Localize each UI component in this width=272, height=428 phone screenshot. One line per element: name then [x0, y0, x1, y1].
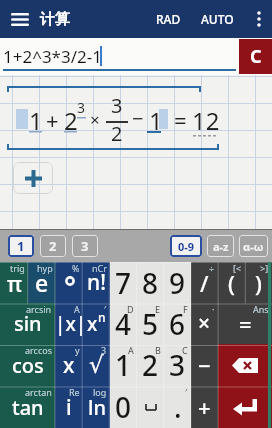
staticText: [<	[233, 262, 242, 274]
staticText: ′	[104, 303, 107, 315]
staticText: x	[87, 311, 98, 337]
button[interactable]: 3	[72, 235, 98, 257]
button[interactable]: B	[137, 344, 164, 386]
staticText: 0-9	[178, 239, 195, 254]
button[interactable]: y	[55, 344, 83, 386]
button[interactable]: Ans	[218, 303, 272, 344]
button[interactable]	[13, 162, 53, 194]
button[interactable]: a-z	[207, 235, 234, 257]
staticText: |x|	[55, 311, 83, 337]
button[interactable]: 1	[8, 235, 34, 257]
button[interactable]: arctan	[0, 386, 55, 428]
staticText: hyp	[37, 262, 53, 274]
button[interactable]: RAD	[150, 3, 187, 35]
staticText: 8	[142, 264, 159, 302]
staticText: 3	[101, 344, 107, 356]
staticText: π	[7, 268, 22, 298]
button[interactable]: A	[110, 344, 137, 386]
button[interactable]: 0-9	[170, 235, 202, 257]
staticText: 2	[111, 120, 123, 147]
button[interactable]: arcsin	[0, 303, 55, 344]
button[interactable]: 7	[110, 262, 137, 303]
staticText: E	[155, 303, 161, 315]
button[interactable]: 3	[83, 344, 110, 386]
button[interactable]: hyp	[28, 262, 56, 303]
staticText: 1+2^3*3/2-1	[3, 45, 102, 68]
button[interactable]: %	[56, 262, 83, 303]
staticText: D	[127, 303, 134, 315]
staticText: (	[228, 268, 235, 298]
button[interactable]: D	[110, 303, 137, 344]
staticText: tan	[12, 394, 44, 421]
staticText: n	[98, 309, 106, 325]
staticText: a-z	[213, 239, 229, 254]
button[interactable]: α-ω	[239, 235, 268, 257]
button[interactable]: +	[191, 386, 218, 428]
button[interactable]	[218, 386, 272, 428]
staticText: 3	[77, 98, 86, 117]
button[interactable]: C	[239, 39, 272, 74]
staticText: y	[75, 344, 80, 356]
staticText: )	[255, 268, 262, 298]
button[interactable]: −	[191, 344, 218, 386]
button[interactable]: 0	[110, 386, 137, 428]
staticText: 2	[49, 237, 57, 255]
staticText: ×	[198, 309, 211, 338]
staticText: RAD	[156, 11, 181, 27]
staticText: i	[66, 393, 72, 422]
staticText: 2	[142, 346, 159, 384]
staticText: 1	[149, 104, 163, 137]
staticText: C	[250, 44, 262, 69]
staticText: ×	[90, 108, 100, 131]
button[interactable]: trig	[0, 262, 28, 303]
button[interactable]: A	[55, 303, 83, 344]
button[interactable]: [<	[218, 262, 245, 303]
button[interactable]: ÷	[191, 262, 218, 303]
staticText: F	[183, 303, 188, 315]
button[interactable]: 2	[40, 235, 66, 257]
staticText: 3	[111, 92, 123, 119]
button[interactable]: ′	[83, 303, 110, 344]
staticText: 6	[169, 305, 186, 343]
staticText: A	[128, 344, 134, 356]
button[interactable]: 9	[164, 262, 191, 303]
staticText: B	[155, 344, 161, 356]
button[interactable]: >]	[245, 262, 272, 303]
staticText: ln	[88, 394, 106, 421]
button[interactable]	[137, 386, 164, 428]
staticText: 12	[192, 104, 220, 137]
staticText: A	[74, 303, 80, 315]
button[interactable]: ·	[191, 303, 218, 344]
button[interactable]: AUTO	[195, 3, 240, 35]
staticText: 9	[169, 264, 186, 302]
button[interactable]: E	[137, 303, 164, 344]
button[interactable]: 8	[137, 262, 164, 303]
button[interactable]	[246, 0, 272, 38]
staticText: trig	[10, 262, 25, 274]
staticText: sin	[14, 310, 42, 337]
staticText: +	[198, 392, 211, 422]
button[interactable]: C	[164, 344, 191, 386]
staticText: 计算	[40, 10, 70, 29]
staticText: 3	[169, 346, 186, 384]
button[interactable]: nCr	[83, 262, 110, 303]
button[interactable]: Re	[55, 386, 83, 428]
staticText: nCr	[92, 262, 107, 274]
staticText: arcsin	[26, 303, 52, 315]
staticText: e	[35, 267, 49, 298]
staticText: 3	[81, 237, 89, 255]
staticText: .	[174, 388, 182, 426]
staticText: ·	[212, 303, 215, 315]
staticText: =	[174, 105, 187, 135]
staticText: log	[93, 386, 107, 398]
staticText: 4	[115, 305, 132, 343]
button[interactable]: arccos	[0, 344, 55, 386]
staticText: 5	[142, 305, 159, 343]
button[interactable]: log	[83, 386, 110, 428]
button[interactable]	[218, 344, 272, 386]
button[interactable]: ′	[164, 386, 191, 428]
button[interactable]: F	[164, 303, 191, 344]
staticText: 7	[115, 264, 132, 302]
staticText: 1	[29, 104, 43, 137]
button[interactable]	[0, 0, 40, 38]
